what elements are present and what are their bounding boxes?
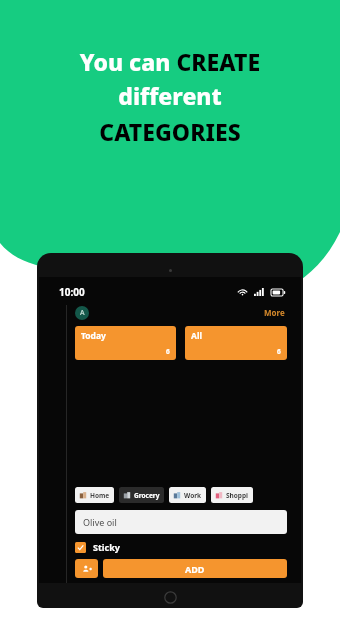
button[interactable]: More <box>262 305 287 320</box>
staticText: Grocery <box>134 491 160 500</box>
staticText: Sticky <box>93 541 120 553</box>
staticText: Today <box>81 330 106 342</box>
staticText: All <box>191 330 202 342</box>
staticText: 10:00 <box>59 285 85 299</box>
staticText: different <box>18 80 322 111</box>
staticText: More <box>264 307 285 318</box>
staticText: 6 <box>277 347 281 356</box>
button[interactable]: Account <box>75 306 89 320</box>
button[interactable]: Work <box>169 487 206 503</box>
staticText: CATEGORIES <box>18 116 322 147</box>
button[interactable]: Shoppi <box>211 487 253 503</box>
staticText: Olive oil <box>83 516 117 528</box>
button[interactable]: Today <box>75 326 176 360</box>
staticText: 6 <box>166 347 170 356</box>
button[interactable]: Home <box>75 487 114 503</box>
staticText: You can CREATE <box>18 46 322 77</box>
button[interactable]: Sticky <box>75 541 120 553</box>
button[interactable]: Olive oil <box>75 510 287 534</box>
staticText: Home <box>90 491 110 500</box>
button[interactable]: Grocery <box>119 487 164 503</box>
button[interactable]: ADD <box>103 559 287 578</box>
button[interactable]: Add person <box>75 559 98 578</box>
staticText: Work <box>184 491 202 500</box>
staticText: Shoppi <box>226 491 249 500</box>
staticText: A <box>80 308 85 318</box>
staticText: ADD <box>185 563 205 575</box>
button[interactable]: All <box>185 326 287 360</box>
